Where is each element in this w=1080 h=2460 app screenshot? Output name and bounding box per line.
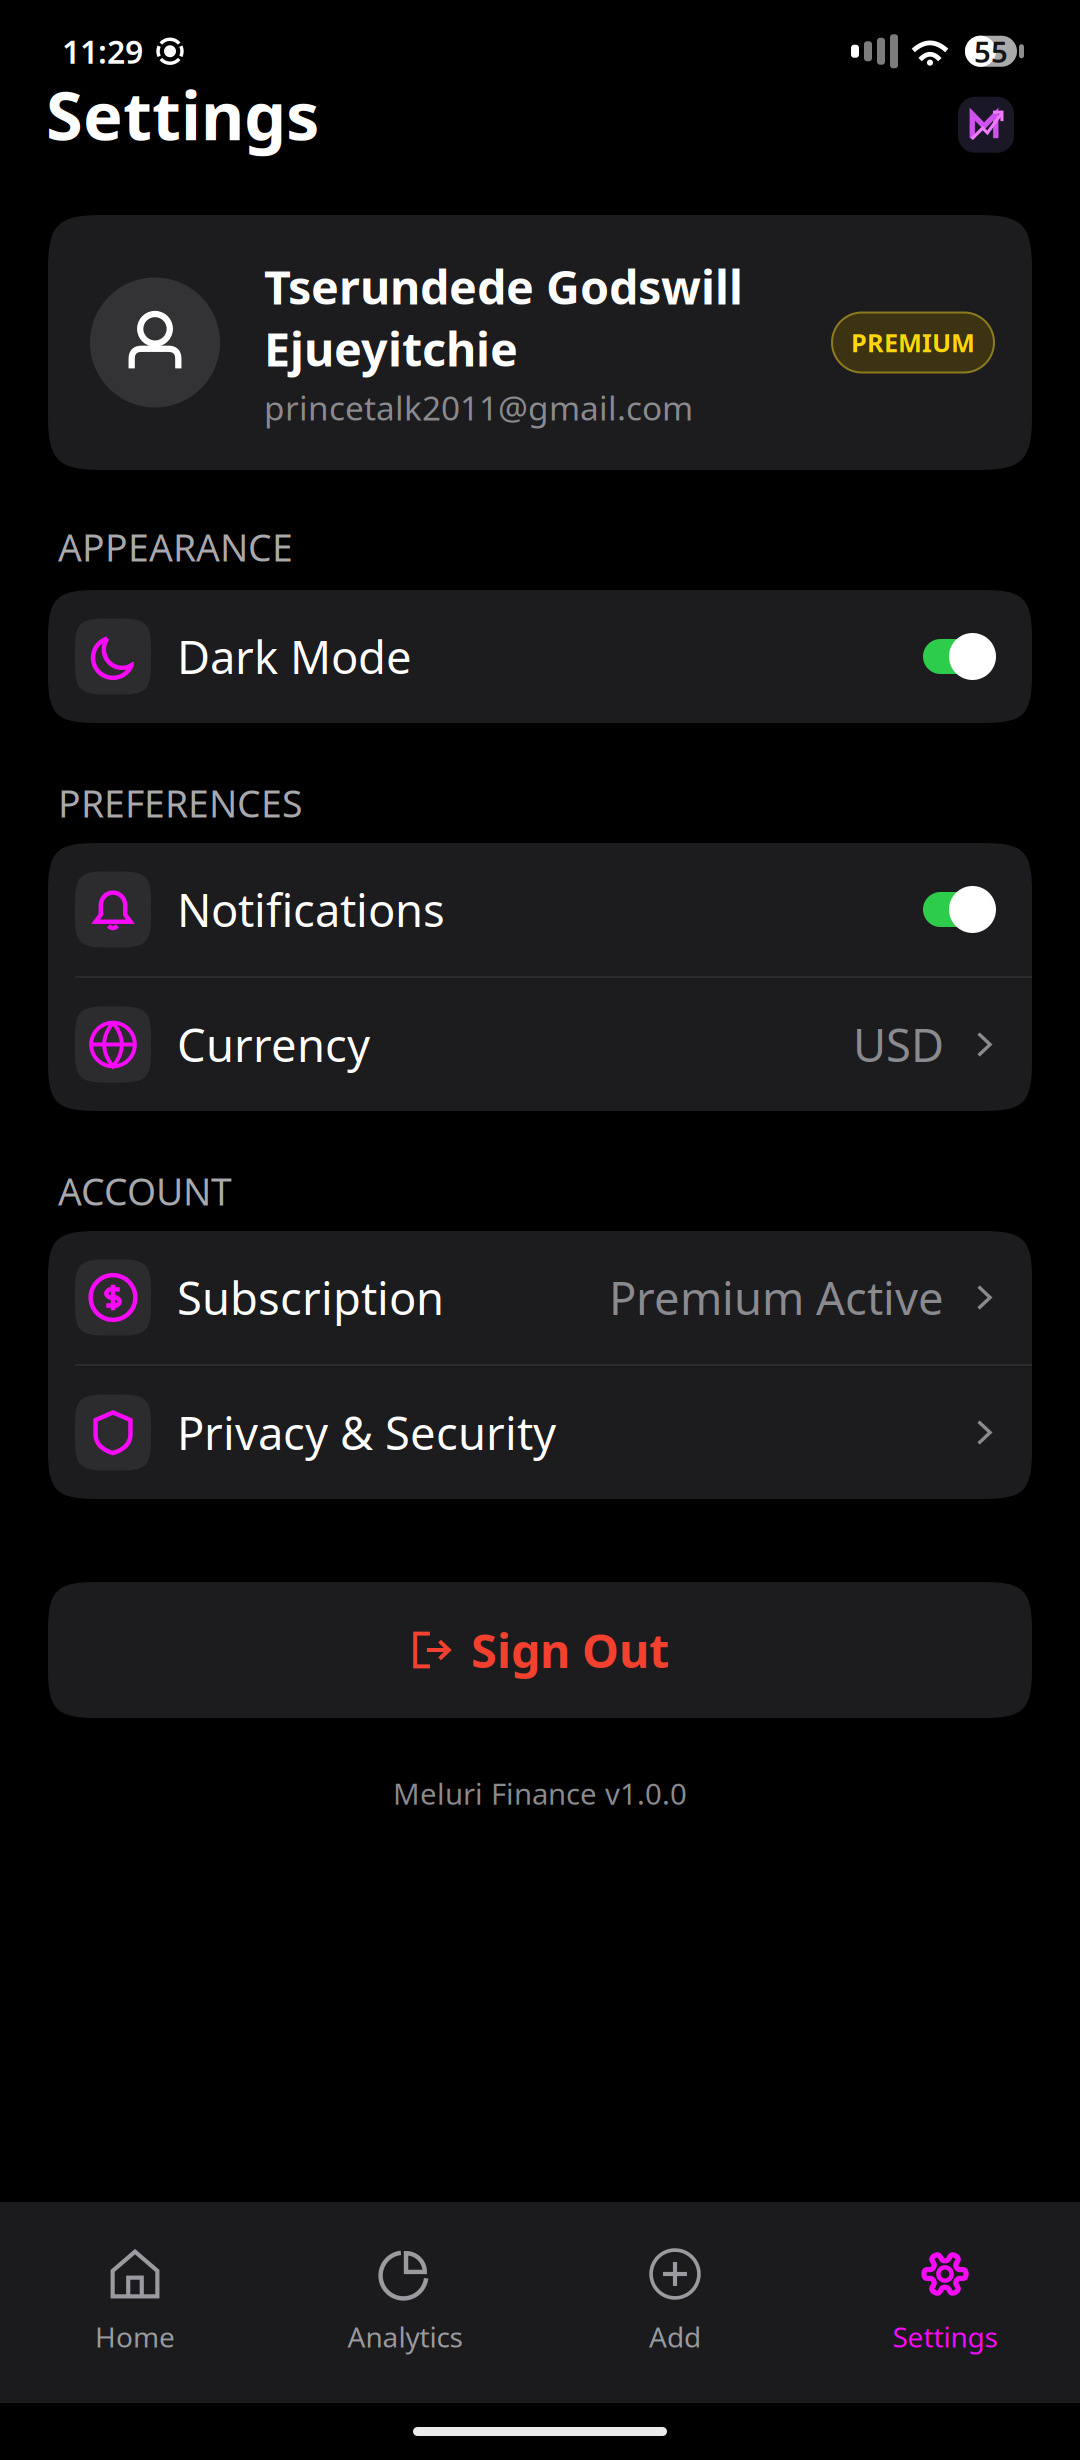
staticText: Sign Out xyxy=(471,1619,669,1681)
staticText: 55 xyxy=(974,32,1008,71)
staticText: princetalk2011@gmail.com xyxy=(264,385,693,430)
staticText: Analytics xyxy=(347,2318,462,2355)
staticText: Notifications xyxy=(177,879,445,940)
staticText: Home xyxy=(95,2318,175,2355)
staticText: Tserundede Godswill Ejueyitchie xyxy=(264,255,743,379)
staticText: PREFERENCES xyxy=(58,778,302,828)
staticText: PREMIUM xyxy=(851,326,975,359)
staticText: 11:29 xyxy=(62,30,143,72)
staticText: Subscription xyxy=(177,1267,444,1328)
button[interactable]: Add xyxy=(540,2202,810,2403)
button[interactable]: Home xyxy=(0,2202,270,2403)
button[interactable]: Subscription xyxy=(48,1231,1032,1364)
staticText: APPEARANCE xyxy=(58,522,293,572)
staticText: Meluri Finance v1.0.0 xyxy=(393,1774,687,1813)
staticText: Privacy & Security xyxy=(177,1402,556,1463)
staticText: Currency xyxy=(177,1014,370,1075)
button[interactable]: Analytics xyxy=(270,2202,540,2403)
staticText: Dark Mode xyxy=(177,626,412,687)
button[interactable]: Currency xyxy=(48,978,1032,1111)
button[interactable]: Notifications xyxy=(48,843,1032,976)
button[interactable]: Privacy & Security xyxy=(48,1366,1032,1499)
button[interactable]: Dark Mode xyxy=(0,590,1080,723)
staticText: USD xyxy=(853,1014,944,1075)
button[interactable]: Settings xyxy=(810,2202,1080,2403)
staticText: Add xyxy=(649,2318,701,2355)
staticText: Settings xyxy=(46,70,319,158)
staticText: Settings xyxy=(892,2318,997,2355)
staticText: ACCOUNT xyxy=(58,1166,232,1216)
button[interactable]: Meluri Finance xyxy=(958,97,1014,153)
button[interactable]: Sign Out xyxy=(0,1582,1080,1718)
staticText: Premium Active xyxy=(609,1267,944,1328)
